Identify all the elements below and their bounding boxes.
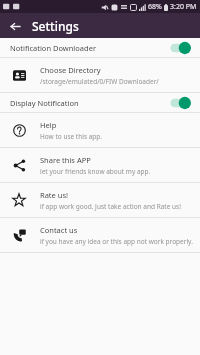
button[interactable]: Notification Downloader [0, 38, 200, 57]
staticText: Notification Downloader [10, 43, 168, 53]
staticText: Contact us [40, 225, 78, 235]
staticText: 68% [148, 2, 162, 12]
staticText: How to use this app. [40, 132, 103, 141]
staticText: let your friends know about my app. [40, 167, 151, 176]
button[interactable]: Share this APP [0, 148, 200, 182]
staticText: Rate us! [40, 190, 69, 200]
button[interactable]: Toggle [168, 41, 192, 55]
staticText: Share this APP [40, 155, 91, 165]
staticText: if you have any idea or this app not wor… [40, 237, 193, 246]
staticText: /storage/emulated/0/FIW Downloader/ [40, 77, 159, 86]
button[interactable]: Back [4, 15, 26, 37]
staticText: if app work good. Just take action and R… [40, 202, 181, 211]
button[interactable]: Help [0, 113, 200, 147]
button[interactable]: Contact us [0, 218, 200, 252]
staticText: Choose Directory [40, 65, 101, 75]
staticText: Settings [32, 18, 79, 34]
button[interactable]: Toggle [168, 96, 192, 110]
staticText: 3:20 PM [170, 2, 197, 12]
button[interactable]: Rate us! [0, 183, 200, 217]
staticText: Display Notification [10, 98, 168, 108]
button[interactable]: Display Notification [0, 93, 200, 112]
staticText: Help [40, 120, 57, 130]
button[interactable]: Choose Directory [0, 58, 200, 92]
